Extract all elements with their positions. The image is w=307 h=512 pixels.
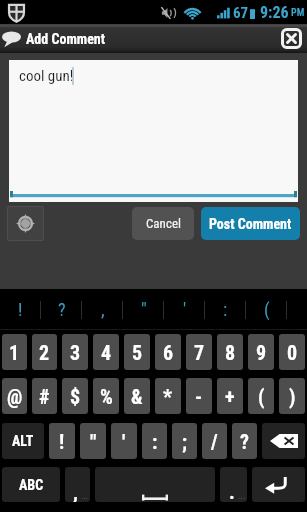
staticText: " bbox=[90, 430, 97, 453]
staticText: PM bbox=[291, 7, 305, 19]
button[interactable]: ' bbox=[164, 289, 205, 330]
button[interactable]: ? bbox=[41, 289, 82, 330]
staticText: & bbox=[131, 385, 143, 408]
button[interactable]: - bbox=[186, 378, 212, 414]
staticText: 8 bbox=[225, 341, 236, 364]
button[interactable]: % bbox=[93, 378, 119, 414]
button[interactable]: 0 bbox=[279, 334, 305, 370]
staticText: + bbox=[225, 385, 235, 408]
button[interactable]: " bbox=[123, 289, 164, 330]
button[interactable]: 9 bbox=[248, 334, 274, 370]
button[interactable]: " bbox=[80, 423, 106, 459]
button[interactable]: ( bbox=[248, 378, 274, 414]
staticText: Post Comment bbox=[209, 216, 292, 232]
button[interactable]: ABC bbox=[2, 467, 60, 502]
staticText: / bbox=[211, 430, 218, 453]
staticText: ; bbox=[182, 430, 188, 453]
button[interactable]: * bbox=[155, 378, 181, 414]
button[interactable]: Post Comment bbox=[201, 207, 300, 240]
button[interactable]: : bbox=[205, 289, 246, 330]
staticText: 6 bbox=[163, 341, 174, 364]
staticText: " bbox=[141, 299, 147, 320]
staticText: ... bbox=[81, 492, 88, 501]
staticText: - bbox=[195, 385, 203, 408]
button[interactable]: @ bbox=[2, 378, 27, 414]
staticText: . bbox=[229, 480, 235, 502]
staticText: 67 bbox=[233, 4, 249, 22]
staticText: 0 bbox=[287, 341, 298, 364]
button[interactable]: cool gun! bbox=[9, 60, 298, 202]
staticText: , bbox=[101, 299, 105, 320]
staticText: 9 bbox=[256, 341, 267, 364]
button[interactable]: Backspace bbox=[262, 423, 305, 459]
button[interactable]: ! bbox=[0, 289, 41, 330]
staticText: 1 bbox=[9, 341, 20, 364]
button[interactable]: # bbox=[32, 378, 57, 414]
button[interactable]: 7 bbox=[186, 334, 212, 370]
button[interactable]: Close bbox=[281, 28, 302, 49]
staticText: : bbox=[152, 430, 158, 453]
button[interactable]: , bbox=[82, 289, 123, 330]
button[interactable]: 3 bbox=[62, 334, 88, 370]
button[interactable]: Cancel bbox=[132, 207, 194, 240]
button[interactable]: Use my location bbox=[7, 206, 44, 241]
button[interactable]: , bbox=[65, 467, 90, 502]
staticText: Add Comment bbox=[26, 31, 106, 47]
button[interactable]: 2 bbox=[32, 334, 57, 370]
button[interactable]: 8 bbox=[217, 334, 243, 370]
button[interactable]: ! bbox=[49, 423, 75, 459]
staticText: ... bbox=[238, 492, 245, 501]
staticText: Cancel bbox=[146, 216, 181, 231]
staticText: ( bbox=[264, 299, 270, 320]
button[interactable]: . bbox=[220, 467, 247, 502]
button[interactable]: & bbox=[124, 378, 150, 414]
button[interactable]: 6 bbox=[155, 334, 181, 370]
staticText: ? bbox=[240, 430, 249, 453]
staticText: 2 bbox=[39, 341, 50, 364]
button[interactable]: / bbox=[202, 423, 227, 459]
staticText: # bbox=[39, 385, 50, 408]
button[interactable]: $ bbox=[62, 378, 88, 414]
staticText: ? bbox=[58, 299, 66, 320]
staticText: ! bbox=[18, 299, 23, 320]
button[interactable]: : bbox=[142, 423, 167, 459]
button[interactable]: ? bbox=[232, 423, 257, 459]
button[interactable]: + bbox=[217, 378, 243, 414]
staticText: ! bbox=[59, 430, 65, 453]
staticText: ( bbox=[258, 385, 265, 408]
staticText: ) bbox=[289, 385, 296, 408]
staticText: ' bbox=[183, 299, 187, 320]
button[interactable]: ' bbox=[111, 423, 137, 459]
staticText: * bbox=[163, 385, 173, 408]
staticText: % bbox=[100, 385, 113, 408]
button[interactable]: ALT bbox=[2, 423, 44, 459]
staticText: cool gun! bbox=[19, 67, 74, 85]
button[interactable]: 1 bbox=[2, 334, 27, 370]
staticText: 5 bbox=[132, 341, 143, 364]
staticText: 9:26 bbox=[260, 3, 289, 22]
button[interactable]: 4 bbox=[93, 334, 119, 370]
staticText: : bbox=[223, 299, 228, 320]
button[interactable]: Enter bbox=[252, 467, 305, 502]
staticText: ALT bbox=[12, 433, 34, 449]
button[interactable]: ) bbox=[279, 378, 305, 414]
staticText: ABC bbox=[19, 477, 44, 493]
staticText: ' bbox=[122, 430, 126, 453]
button[interactable]: ; bbox=[172, 423, 197, 459]
staticText: 3 bbox=[70, 341, 81, 364]
staticText: @ bbox=[7, 385, 23, 408]
button[interactable]: 5 bbox=[124, 334, 150, 370]
staticText: 7 bbox=[194, 341, 205, 364]
button[interactable]: Space bbox=[95, 467, 215, 502]
staticText: 4 bbox=[101, 341, 112, 364]
staticText: $ bbox=[70, 385, 81, 408]
staticText: , bbox=[73, 480, 78, 502]
button[interactable]: ( bbox=[246, 289, 287, 330]
